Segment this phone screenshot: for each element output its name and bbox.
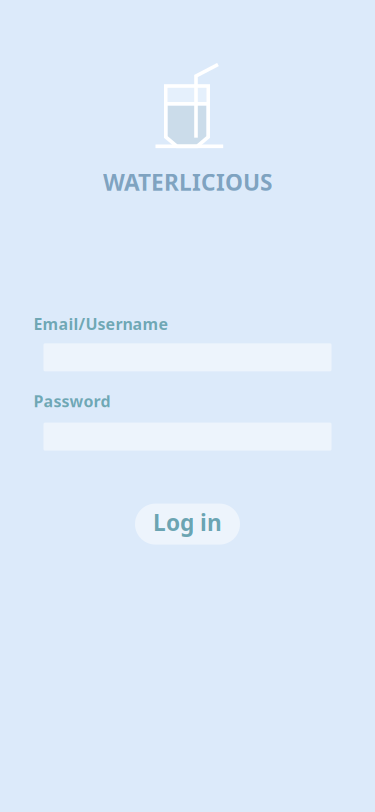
staticText: Log in	[153, 507, 222, 537]
staticText: Email/Username	[33, 313, 168, 334]
staticText: Password	[33, 390, 110, 411]
staticText: WATERLICIOUS	[103, 167, 272, 197]
button[interactable]: Log in	[135, 504, 240, 545]
